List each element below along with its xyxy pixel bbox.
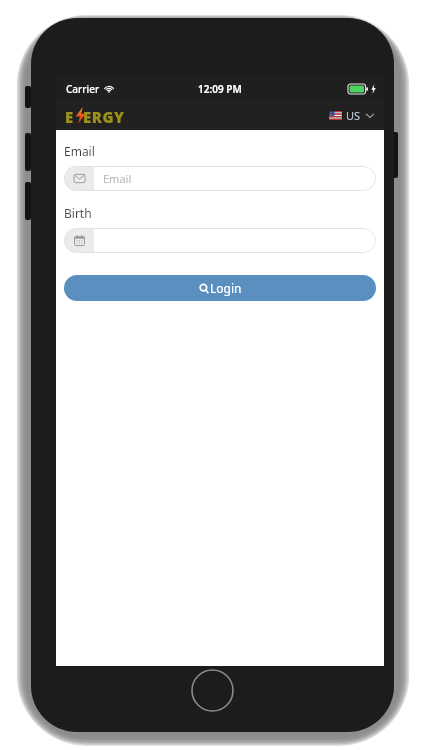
staticText: Email [64,143,95,159]
button[interactable]: US [329,108,374,123]
staticText: Email [103,171,132,186]
button[interactable]: Home [191,669,234,712]
staticText: US [346,108,361,123]
staticText: E [65,107,74,125]
staticText: Login [210,280,242,296]
button[interactable]: Email [64,166,376,191]
staticText: Birth [64,205,92,221]
button[interactable]: Login [64,275,376,301]
staticText: ERGY [83,107,125,125]
staticText: 12:09 PM [198,82,242,96]
button[interactable] [64,228,376,253]
button[interactable]: E [65,107,145,125]
staticText: Carrier [66,82,100,96]
